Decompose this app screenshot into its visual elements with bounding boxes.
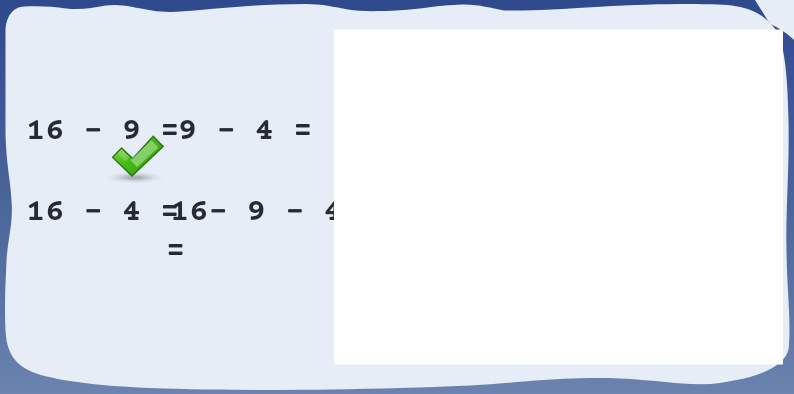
- button[interactable]: [0, 0, 794, 394]
